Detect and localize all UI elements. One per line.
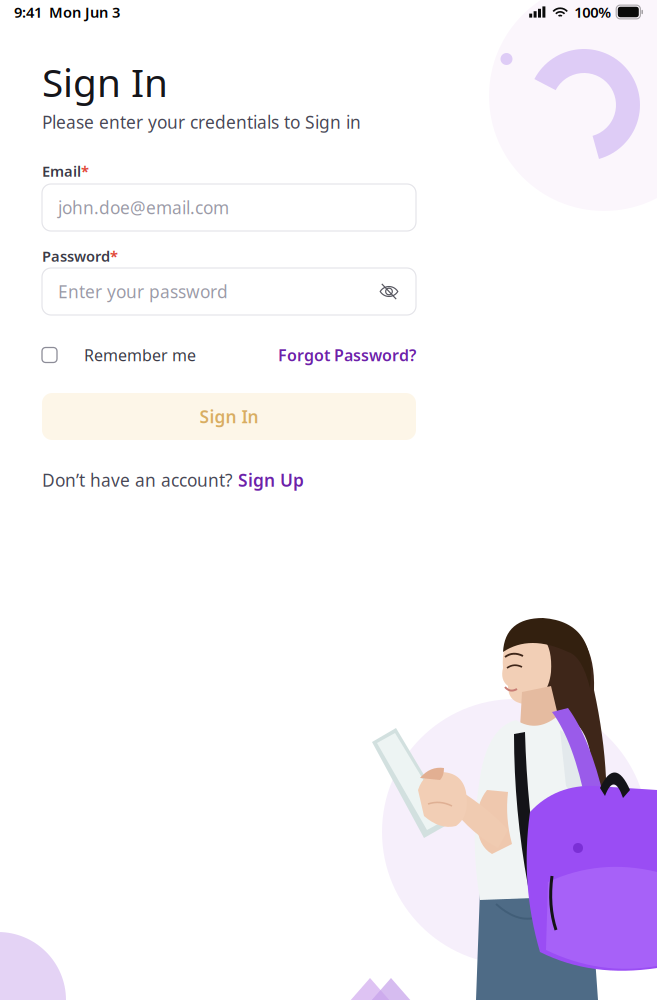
staticText: Enter your password (58, 280, 228, 303)
staticText: 100% (574, 2, 611, 22)
staticText: Sign In (42, 56, 168, 108)
staticText: Please enter your credentials to Sign in (42, 110, 361, 133)
staticText: Sign In (199, 405, 258, 428)
staticText: Remember me (84, 344, 196, 366)
staticText: Email (42, 161, 81, 181)
staticText: john.doe@email.com (58, 196, 229, 219)
staticText: Forgot Password? (278, 344, 416, 366)
staticText: Sign Up (238, 468, 304, 491)
button[interactable]: Show password (376, 278, 402, 304)
button[interactable]: Sign Up (238, 468, 304, 491)
staticText: 9:41 (14, 2, 42, 22)
staticText: Don’t have an account? (42, 468, 238, 491)
staticText: Mon Jun 3 (49, 2, 120, 22)
staticText: * (81, 161, 89, 181)
button[interactable]: Sign In (42, 393, 416, 440)
button[interactable]: Remember me (42, 344, 196, 366)
staticText: Password (42, 246, 110, 266)
button[interactable]: Forgot Password? (278, 344, 416, 366)
staticText: * (110, 246, 118, 266)
